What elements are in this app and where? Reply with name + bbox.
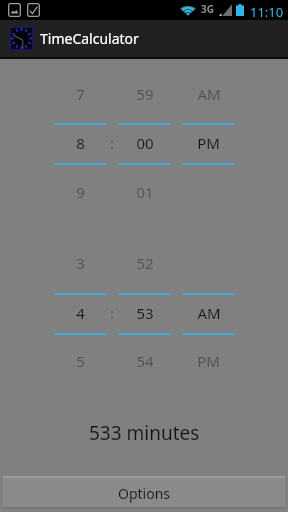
staticText: TimeCalculator	[40, 29, 139, 48]
button[interactable]: 54	[118, 345, 171, 377]
staticText: 53	[136, 303, 154, 323]
staticText: PM	[197, 351, 220, 371]
staticText: :	[110, 133, 115, 153]
staticText: 11:10	[250, 3, 284, 21]
button[interactable]: AM	[182, 78, 235, 110]
staticText: :	[110, 303, 115, 323]
button[interactable]: 00	[118, 127, 171, 159]
other: Battery full	[236, 4, 244, 16]
button[interactable]: 4	[54, 297, 107, 329]
staticText: 5	[76, 351, 85, 371]
staticText: 01	[136, 182, 154, 202]
button[interactable]: TimeCalculator icon	[0, 20, 288, 57]
other: Mobile signal	[219, 4, 232, 16]
button[interactable]: PM	[182, 127, 235, 159]
button[interactable]: AM	[182, 297, 235, 329]
button[interactable]: 9	[54, 176, 107, 208]
button[interactable]: Options	[3, 476, 285, 509]
button[interactable]: 8	[54, 127, 107, 159]
button[interactable]: 3	[54, 247, 107, 279]
button[interactable]: 53	[118, 297, 171, 329]
button[interactable]: 59	[118, 78, 171, 110]
staticText: 9	[76, 182, 85, 202]
staticText: 7	[76, 84, 85, 104]
staticText: 3G	[201, 2, 214, 16]
other: Screenshot captured	[8, 3, 21, 17]
staticText: AM	[197, 303, 221, 323]
button[interactable]: 01	[118, 176, 171, 208]
other: Task complete	[27, 3, 40, 17]
button[interactable]: 5	[54, 345, 107, 377]
staticText: 52	[136, 253, 154, 273]
staticText: 533 minutes	[89, 420, 200, 446]
staticText: 00	[136, 133, 154, 153]
staticText: 59	[136, 84, 154, 104]
other: Wi-Fi connected	[180, 4, 196, 16]
button[interactable]: PM	[182, 345, 235, 377]
staticText: 3	[76, 253, 85, 273]
staticText: 54	[136, 351, 154, 371]
staticText: 8	[76, 133, 85, 153]
button[interactable]: 52	[118, 247, 171, 279]
button[interactable]: 7	[54, 78, 107, 110]
staticText: 4	[76, 303, 85, 323]
staticText: Options	[118, 484, 171, 503]
staticText: AM	[197, 84, 221, 104]
staticText: PM	[197, 133, 220, 153]
other: TimeCalculator icon	[9, 26, 34, 51]
